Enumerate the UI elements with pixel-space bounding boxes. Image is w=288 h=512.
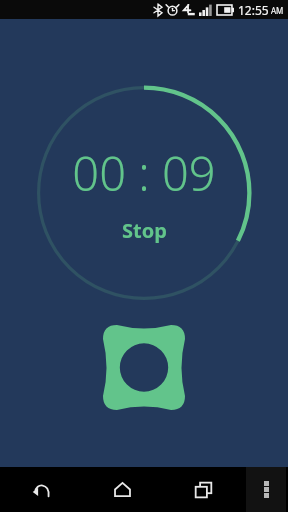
button[interactable]: More options <box>244 467 288 512</box>
staticText: AM <box>271 5 284 16</box>
staticText: 00 : 09 <box>72 141 216 205</box>
button[interactable]: Stop <box>108 215 181 246</box>
staticText: 12:55 <box>238 2 269 18</box>
button[interactable]: Stop timer <box>103 325 185 410</box>
button[interactable]: Home <box>82 467 163 512</box>
button[interactable]: Recent apps <box>163 467 244 512</box>
button[interactable]: Back <box>0 467 82 512</box>
staticText: Stop <box>122 217 167 244</box>
